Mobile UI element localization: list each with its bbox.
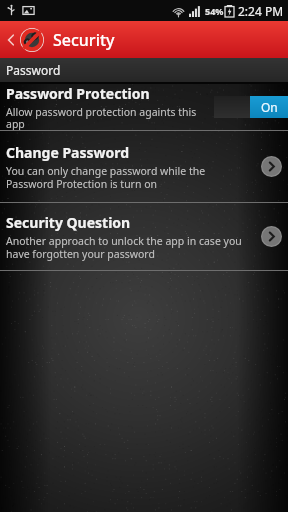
staticText: On xyxy=(261,99,278,115)
button[interactable]: Security Question xyxy=(0,203,288,270)
staticText: Password xyxy=(6,62,61,78)
staticText: Allow password protection againts this a… xyxy=(6,105,214,130)
staticText: Change Password xyxy=(6,143,130,162)
button[interactable]: Navigate up, Security xyxy=(0,23,125,57)
button[interactable]: Password protection, on xyxy=(214,96,288,118)
button[interactable]: Change Password xyxy=(0,131,288,202)
staticText: Security Question xyxy=(6,213,131,232)
button[interactable]: Password Protection xyxy=(0,84,288,130)
staticText: Password Protection xyxy=(6,84,150,103)
staticText: Another approach to unlock the app in ca… xyxy=(6,234,253,261)
staticText: 2:24 PM xyxy=(238,3,284,19)
staticText: Security xyxy=(53,29,115,51)
staticText: You can only change password while the P… xyxy=(6,164,253,191)
staticText: 54% xyxy=(205,5,224,17)
